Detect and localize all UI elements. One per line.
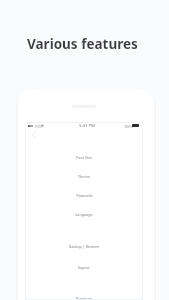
button[interactable]: Backup | Restore — [25, 242, 143, 251]
button[interactable]: Export — [25, 263, 143, 272]
staticText: Theme — [78, 174, 90, 179]
staticText: Export — [78, 265, 90, 270]
staticText: Premium — [76, 296, 92, 300]
button[interactable]: Language — [25, 210, 143, 219]
button[interactable]: Premium — [25, 294, 143, 300]
staticText: Font Size — [76, 155, 92, 160]
staticText: Backup | Restore — [69, 244, 99, 249]
staticText: Language — [75, 212, 93, 217]
button[interactable]: Passcode — [25, 191, 143, 200]
staticText: 100% — [124, 124, 134, 129]
button[interactable]: Theme — [25, 172, 143, 181]
staticText: Various features — [27, 35, 138, 53]
button[interactable]: Back — [28, 128, 40, 140]
staticText: PEN — [35, 124, 42, 129]
staticText: Passcode — [76, 193, 93, 198]
staticText: 9:41 PM — [79, 123, 95, 129]
button[interactable]: Font Size — [25, 153, 143, 162]
